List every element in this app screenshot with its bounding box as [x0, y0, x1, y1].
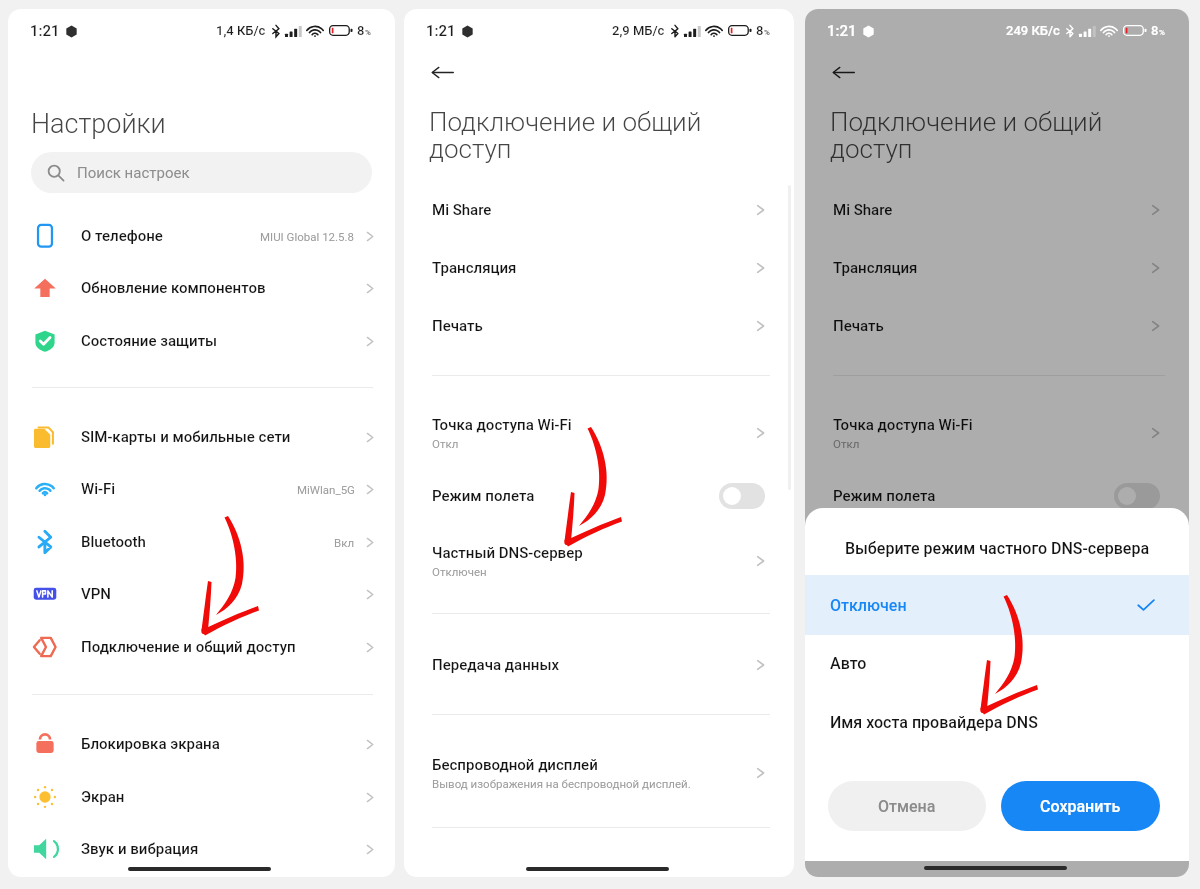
staticText: Трансляция: [833, 259, 918, 277]
staticText: Режим полета: [833, 487, 936, 505]
staticText: Bluetooth: [81, 533, 146, 551]
staticText: Отключен: [830, 596, 907, 615]
staticText: Откл: [432, 437, 459, 450]
staticText: Вкл: [334, 536, 355, 549]
button[interactable]: Сохранить: [1001, 781, 1160, 831]
staticText: Подключение и общий доступ: [81, 638, 296, 656]
button[interactable]: Беспроводной дисплей: [404, 744, 794, 802]
button[interactable]: Поиск настроек: [31, 152, 372, 193]
button[interactable]: Блокировка экрана: [8, 718, 395, 770]
button[interactable]: Передача данных: [805, 636, 1189, 694]
staticText: Поиск настроек: [77, 164, 190, 182]
button[interactable]: Mi Share: [805, 181, 1189, 239]
staticText: Откл: [833, 437, 860, 450]
button[interactable]: Режим полета: [805, 467, 1189, 525]
button[interactable]: VPN: [8, 568, 395, 620]
button[interactable]: SIM-карты и мобильные сети: [8, 411, 395, 463]
staticText: Имя хоста провайдера DNS: [830, 713, 1038, 732]
button[interactable]: Звук и вибрация: [8, 823, 395, 875]
staticText: 2,9 МБ/с: [612, 23, 665, 38]
staticText: Обновление компонентов: [81, 279, 266, 297]
staticText: Отмена: [878, 797, 936, 816]
staticText: Подключение и общий доступ: [429, 107, 702, 165]
staticText: Выберите режим частного DNS-сервера: [805, 539, 1189, 558]
button[interactable]: Имя хоста провайдера DNS: [805, 693, 1189, 751]
button[interactable]: Back: [431, 64, 454, 81]
staticText: Состояние защиты: [81, 332, 218, 350]
button[interactable]: Back: [832, 64, 855, 81]
button[interactable]: Печать: [404, 297, 794, 355]
button[interactable]: Точка доступа Wi-Fi: [404, 404, 794, 462]
staticText: Отключен: [833, 565, 888, 578]
staticText: 1:21: [30, 22, 60, 40]
button[interactable]: Подключение и общий доступ: [8, 621, 395, 673]
button[interactable]: Трансляция: [805, 239, 1189, 297]
button[interactable]: Отключен: [805, 575, 1189, 635]
staticText: VPN: [81, 585, 111, 603]
button[interactable]: Точка доступа Wi-Fi: [805, 404, 1189, 462]
staticText: Трансляция: [432, 259, 517, 277]
staticText: Авто: [830, 654, 867, 673]
staticText: Настройки: [31, 108, 166, 140]
staticText: 8: [357, 23, 365, 38]
staticText: Экран: [81, 788, 125, 806]
staticText: Mi Share: [432, 201, 492, 219]
button[interactable]: Airplane mode toggle: [719, 483, 765, 509]
staticText: 8: [756, 23, 764, 38]
button[interactable]: Режим полета: [404, 467, 794, 525]
button[interactable]: Экран: [8, 771, 395, 823]
button[interactable]: Передача данных: [404, 636, 794, 694]
staticText: %: [365, 28, 371, 37]
staticText: Отключен: [432, 565, 487, 578]
staticText: 1:21: [426, 22, 456, 40]
staticText: Звук и вибрация: [81, 840, 199, 858]
button[interactable]: О телефоне: [8, 210, 395, 262]
button[interactable]: Печать: [805, 297, 1189, 355]
button[interactable]: Отмена: [828, 781, 986, 831]
button[interactable]: Частный DNS-сервер: [404, 532, 794, 590]
button[interactable]: Авто: [805, 634, 1189, 692]
staticText: 8: [1151, 23, 1159, 38]
staticText: MiWlan_5G: [297, 483, 355, 496]
button[interactable]: Airplane mode toggle: [1114, 483, 1160, 509]
staticText: Блокировка экрана: [81, 735, 220, 753]
staticText: MIUI Global 12.5.8: [260, 230, 355, 243]
staticText: Mi Share: [833, 201, 893, 219]
staticText: Режим полета: [432, 487, 535, 505]
staticText: Передача данных: [833, 656, 961, 674]
button[interactable]: Обновление компонентов: [8, 262, 395, 314]
staticText: 1:21: [827, 22, 857, 40]
staticText: Частный DNS-сервер: [833, 544, 984, 562]
staticText: Точка доступа Wi-Fi: [432, 416, 572, 434]
staticText: Вывод изображения на беспроводной диспле…: [833, 777, 1092, 790]
button[interactable]: Mi Share: [404, 181, 794, 239]
staticText: Печать: [432, 317, 483, 335]
button[interactable]: Bluetooth: [8, 516, 395, 568]
staticText: 1,4 КБ/с: [216, 23, 266, 38]
staticText: Сохранить: [1040, 797, 1121, 816]
staticText: SIM-карты и мобильные сети: [81, 428, 291, 446]
staticText: Точка доступа Wi-Fi: [833, 416, 973, 434]
staticText: Передача данных: [432, 656, 560, 674]
staticText: О телефоне: [81, 227, 163, 245]
staticText: Wi-Fi: [81, 480, 116, 498]
button[interactable]: Состояние защиты: [8, 315, 395, 367]
staticText: %: [764, 28, 770, 37]
staticText: Вывод изображения на беспроводной диспле…: [432, 777, 691, 790]
staticText: Частный DNS-сервер: [432, 544, 583, 562]
staticText: 249 КБ/с: [1006, 23, 1060, 38]
button[interactable]: Частный DNS-сервер: [805, 532, 1189, 590]
button[interactable]: Трансляция: [404, 239, 794, 297]
button[interactable]: Wi-Fi: [8, 463, 395, 515]
staticText: %: [1159, 28, 1165, 37]
staticText: Печать: [833, 317, 884, 335]
staticText: Подключение и общий доступ: [830, 107, 1103, 165]
button[interactable]: Беспроводной дисплей: [805, 744, 1189, 802]
staticText: Беспроводной дисплей: [432, 756, 598, 774]
